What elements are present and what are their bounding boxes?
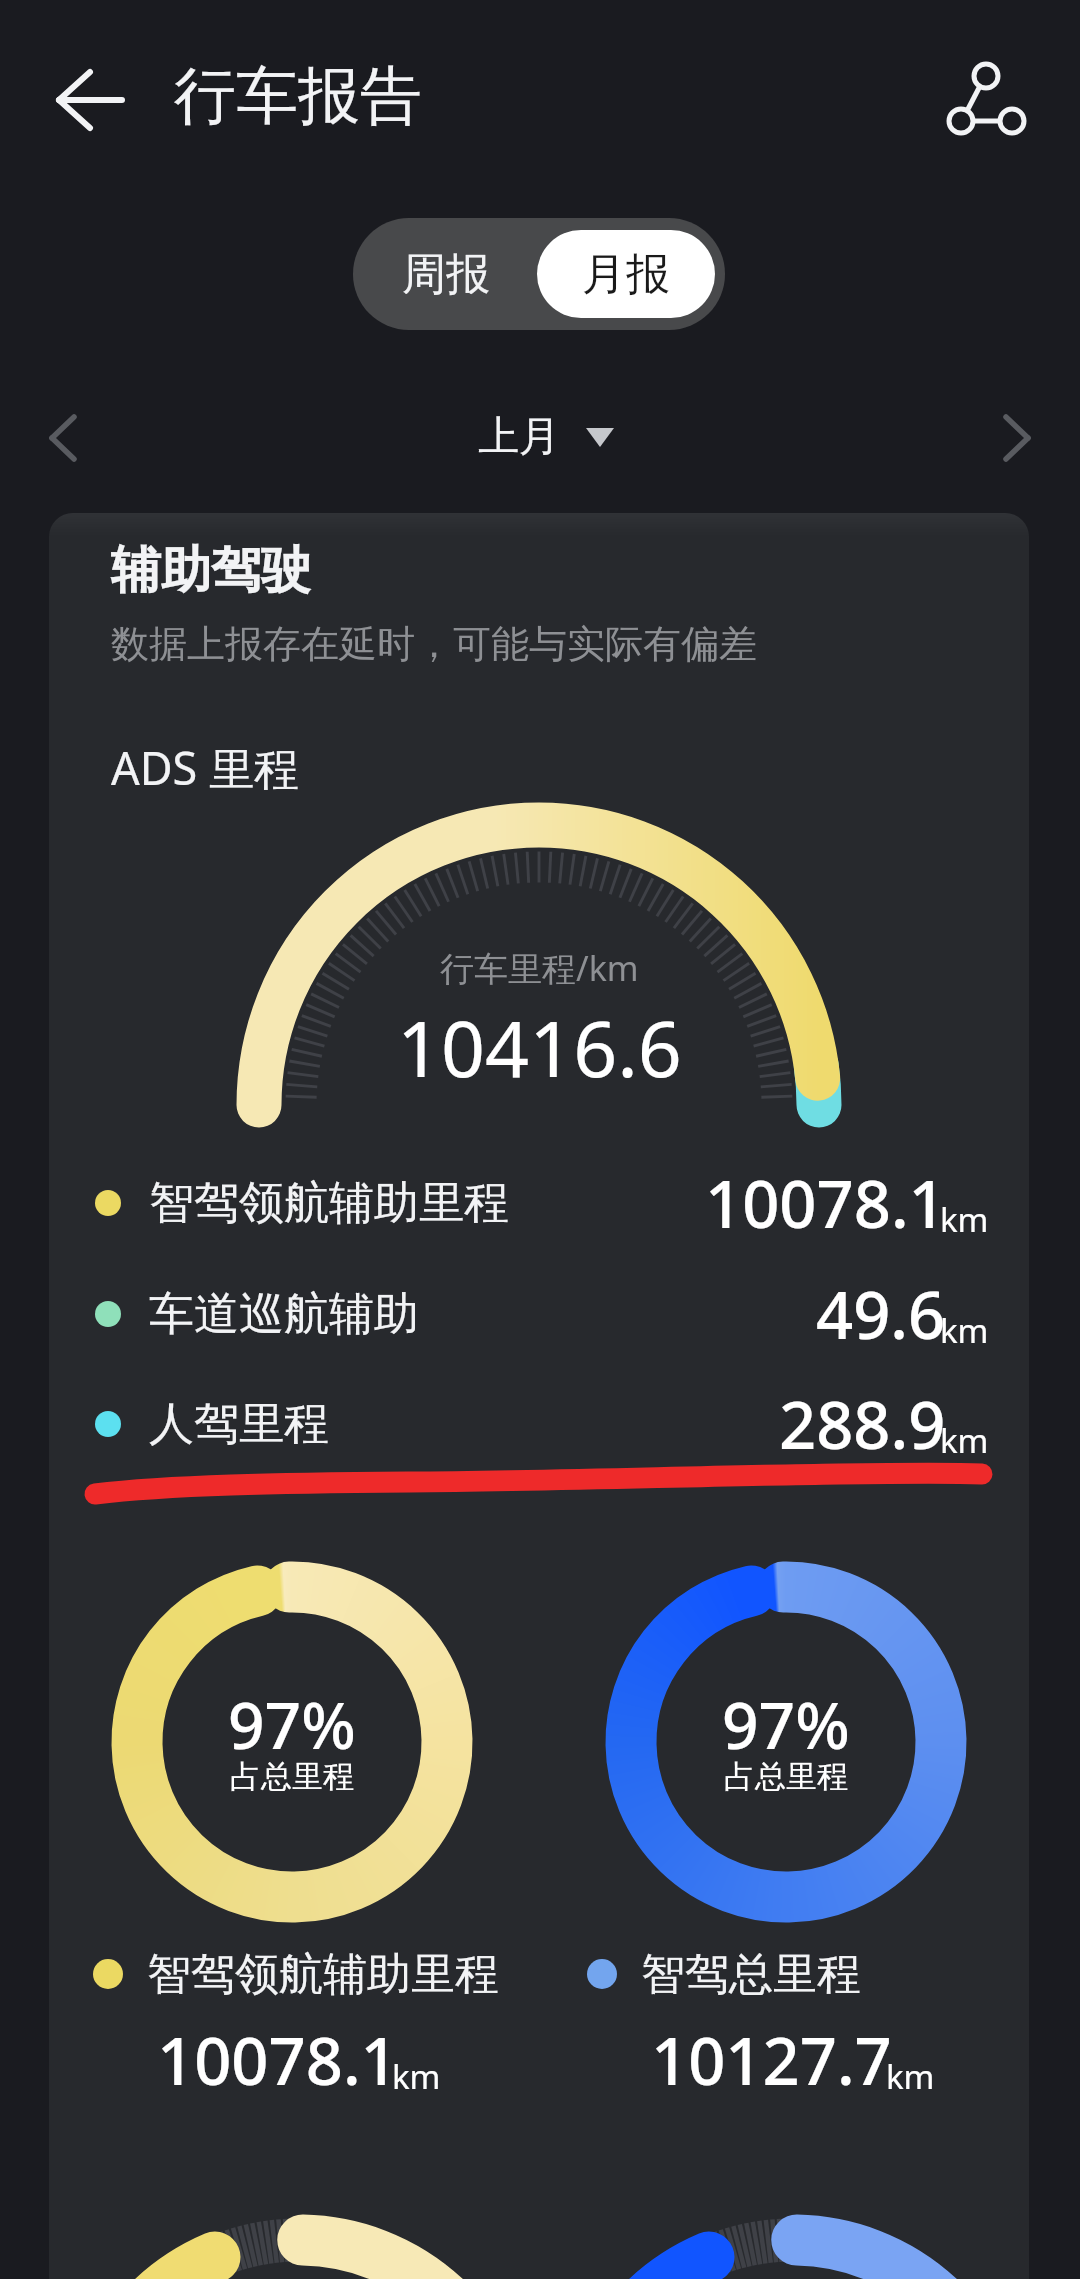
staticText: 占总里程 — [230, 1757, 354, 1796]
staticText: 行车里程/km — [440, 945, 639, 989]
staticText: km — [940, 1418, 989, 1463]
staticText: ADS 里程 — [111, 737, 300, 798]
button[interactable]: 智驾总里程 — [587, 1943, 1029, 2005]
staticText: 车道巡航辅助 — [149, 1286, 419, 1343]
staticText: km — [392, 2054, 441, 2099]
button[interactable]: 月报 — [537, 230, 715, 318]
button[interactable]: 上月 — [478, 402, 638, 472]
staticText: 97% — [228, 1681, 356, 1768]
button[interactable]: 周报 — [353, 218, 539, 330]
staticText: 数据上报存在延时，可能与实际有偏差 — [111, 620, 757, 668]
staticText: km — [940, 1308, 989, 1353]
staticText: 智驾总里程 — [641, 1947, 861, 2002]
button[interactable]: 车道巡航辅助 — [49, 1259, 1029, 1369]
staticText: 智驾领航辅助里程 — [147, 1947, 499, 2002]
button[interactable]: Back — [41, 52, 137, 148]
staticText: 10078.1 — [157, 2016, 398, 2105]
staticText: 智驾领航辅助里程 — [149, 1175, 509, 1232]
staticText: 10127.7 — [651, 2016, 892, 2105]
button[interactable]: Share — [938, 50, 1034, 146]
staticText: 10078.1 — [705, 1159, 946, 1248]
staticText: 占总里程 — [724, 1757, 848, 1796]
button[interactable]: 人驾里程 — [49, 1369, 1029, 1479]
staticText: 行车报告 — [174, 57, 422, 135]
staticText: 上月 — [478, 411, 560, 463]
staticText: km — [940, 1197, 989, 1242]
staticText: 10416.6 — [397, 995, 682, 1095]
staticText: 288.9 — [779, 1380, 946, 1469]
button[interactable]: 智驾领航辅助里程 — [49, 1148, 1029, 1258]
staticText: 97% — [722, 1681, 850, 1768]
button[interactable]: 智驾领航辅助里程 — [93, 1943, 553, 2005]
staticText: km — [886, 2054, 935, 2099]
staticText: 人驾里程 — [149, 1396, 329, 1453]
staticText: 49.6 — [816, 1270, 946, 1359]
button[interactable]: Previous month — [18, 393, 108, 483]
button[interactable]: Next month — [972, 393, 1062, 483]
staticText: 辅助驾驶 — [111, 539, 311, 602]
staticText: 周报 — [402, 247, 490, 302]
staticText: 月报 — [582, 247, 670, 302]
